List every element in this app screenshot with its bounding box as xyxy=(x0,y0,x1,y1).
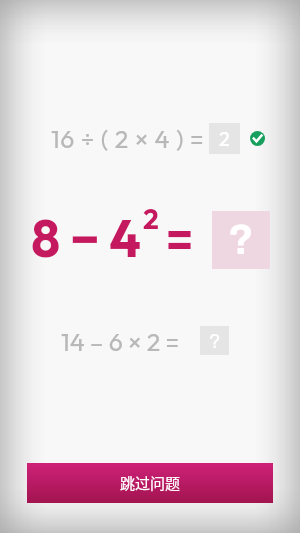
staticText: ? xyxy=(228,217,254,263)
staticText: 2 xyxy=(143,201,159,236)
staticText: 8 − 4 xyxy=(31,205,141,271)
staticText: 2 xyxy=(219,126,230,151)
staticText: ? xyxy=(209,330,221,352)
staticText: 跳过问题 xyxy=(120,472,181,494)
other: Correct xyxy=(250,131,265,146)
staticText: 14 – 6 × 2 = xyxy=(61,326,180,358)
staticText: = xyxy=(166,208,194,268)
button[interactable]: 跳过问题 xyxy=(27,463,273,503)
staticText: 16 ÷ ( 2 × 4 ) = xyxy=(51,123,205,155)
